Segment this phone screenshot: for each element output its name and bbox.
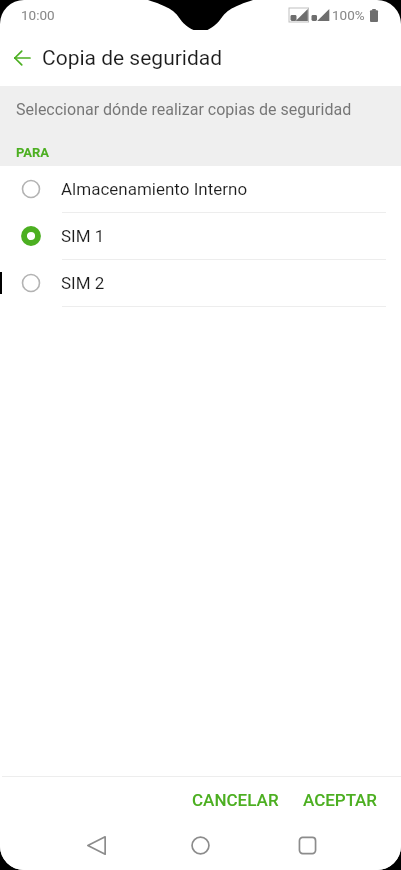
staticText: 10:00 [21, 7, 55, 23]
button[interactable]: Recents [283, 821, 331, 869]
button[interactable]: CANCELAR [180, 782, 291, 818]
staticText: SIM 1 [61, 226, 105, 246]
button[interactable]: SIM 1 [0, 213, 401, 260]
button[interactable]: SIM 2 [0, 260, 401, 307]
staticText: PARA [16, 145, 50, 160]
staticText: Seleccionar dónde realizar copias de seg… [16, 100, 352, 119]
staticText: ACEPTAR [303, 790, 377, 810]
button[interactable]: Back [72, 821, 120, 869]
button[interactable]: Home [176, 821, 224, 869]
button[interactable]: Almacenamiento Interno [0, 166, 401, 213]
staticText: SIM 2 [61, 273, 105, 293]
staticText: 100% [332, 7, 365, 23]
button[interactable]: Back [0, 30, 44, 86]
staticText: Almacenamiento Interno [61, 179, 248, 199]
button[interactable]: ACEPTAR [291, 782, 389, 818]
staticText: CANCELAR [192, 790, 279, 810]
staticText: Copia de seguridad [42, 46, 223, 71]
